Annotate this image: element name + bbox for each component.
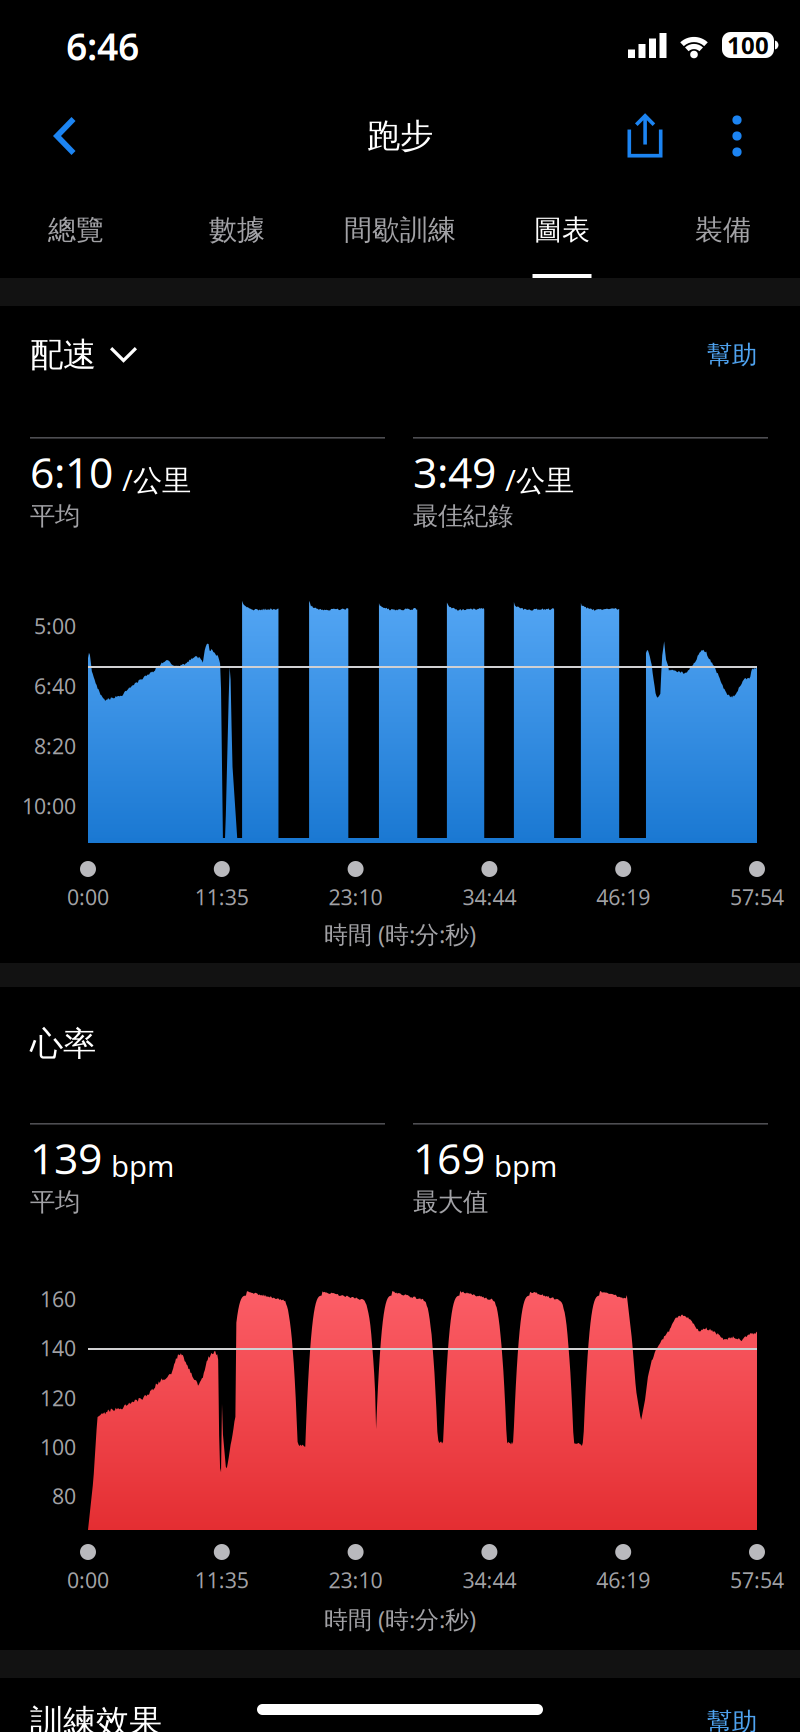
- button[interactable]: Back: [28, 103, 100, 169]
- staticText: 57:54: [730, 1566, 784, 1594]
- staticText: 8:20: [34, 732, 76, 760]
- staticText: 幫助: [707, 339, 757, 370]
- staticText: 平均: [30, 500, 80, 531]
- staticText: 時間 (時:分:秒): [324, 918, 476, 950]
- staticText: 訓練效果: [30, 1701, 162, 1732]
- staticText: 心率: [30, 1023, 96, 1064]
- button[interactable]: 間歇訓練: [315, 192, 485, 290]
- staticText: 34:44: [462, 883, 516, 911]
- staticText: bpm: [111, 1146, 174, 1185]
- staticText: 數據: [209, 213, 265, 247]
- staticText: 139: [30, 1129, 102, 1186]
- staticText: 140: [40, 1334, 76, 1362]
- staticText: 圖表: [534, 213, 590, 247]
- staticText: 57:54: [730, 883, 784, 911]
- staticText: 最佳紀錄: [413, 500, 513, 531]
- staticText: 配速: [30, 334, 96, 375]
- button[interactable]: 數據: [152, 192, 322, 290]
- button[interactable]: 裝備: [638, 192, 800, 290]
- staticText: 46:19: [596, 1566, 650, 1594]
- staticText: bpm: [494, 1146, 557, 1185]
- staticText: 100: [727, 29, 769, 61]
- button[interactable]: 幫助: [677, 1702, 757, 1732]
- staticText: 最大值: [413, 1186, 488, 1217]
- staticText: 幫助: [707, 1706, 757, 1732]
- button[interactable]: 總覽: [0, 192, 161, 290]
- staticText: 160: [40, 1285, 76, 1313]
- staticText: 3:49: [413, 443, 496, 500]
- staticText: 6:46: [66, 21, 139, 71]
- staticText: 80: [52, 1482, 76, 1510]
- staticText: 裝備: [695, 213, 751, 247]
- staticText: /公里: [122, 460, 191, 499]
- staticText: 間歇訓練: [344, 213, 456, 247]
- staticText: 6:10: [30, 443, 113, 500]
- staticText: 0:00: [67, 1566, 109, 1594]
- staticText: /公里: [505, 460, 574, 499]
- staticText: 10:00: [22, 792, 76, 820]
- staticText: 34:44: [462, 1566, 516, 1594]
- staticText: 23:10: [329, 1566, 383, 1594]
- button[interactable]: 配速: [30, 331, 137, 379]
- staticText: 6:40: [34, 672, 76, 700]
- staticText: 23:10: [329, 883, 383, 911]
- staticText: 11:35: [195, 1566, 249, 1594]
- staticText: 169: [413, 1129, 485, 1186]
- staticText: 11:35: [195, 883, 249, 911]
- staticText: 總覽: [48, 213, 104, 247]
- staticText: 時間 (時:分:秒): [324, 1603, 476, 1635]
- button[interactable]: Share: [610, 103, 680, 169]
- staticText: 0:00: [67, 883, 109, 911]
- staticText: 平均: [30, 1186, 80, 1217]
- staticText: 跑步: [367, 115, 433, 156]
- staticText: 120: [40, 1384, 76, 1412]
- staticText: 46:19: [596, 883, 650, 911]
- button[interactable]: More options: [706, 103, 768, 169]
- staticText: 100: [40, 1433, 76, 1461]
- staticText: 5:00: [34, 612, 76, 640]
- button[interactable]: 圖表: [477, 192, 647, 290]
- button[interactable]: 幫助: [677, 333, 757, 377]
